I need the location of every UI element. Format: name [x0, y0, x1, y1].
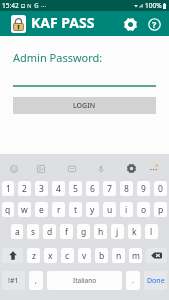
staticText: l — [150, 226, 153, 238]
staticText: q — [5, 204, 11, 216]
button[interactable]: q — [2, 202, 14, 217]
button[interactable]: f — [60, 224, 73, 239]
staticText: v — [82, 250, 87, 262]
staticText: j — [116, 226, 119, 238]
staticText: x — [48, 250, 53, 262]
button[interactable]: t — [69, 202, 82, 217]
staticText: o — [141, 204, 147, 216]
staticText: c — [65, 250, 70, 262]
button[interactable]: g — [77, 224, 90, 239]
staticText: w — [21, 204, 28, 216]
button[interactable]: 3 — [35, 181, 48, 196]
button[interactable]: Settings — [119, 13, 141, 35]
button[interactable]: 8 — [120, 181, 133, 196]
staticText: Done — [147, 276, 165, 286]
staticText: z — [32, 250, 36, 262]
staticText: LOGIN — [73, 101, 96, 111]
button[interactable]: Backspace — [146, 248, 167, 263]
button[interactable]: w — [18, 202, 31, 217]
button[interactable]: c — [61, 248, 74, 263]
button[interactable]: o — [137, 202, 150, 217]
button[interactable]: More options — [148, 163, 159, 174]
button[interactable]: Help — [143, 13, 165, 35]
staticText: N — [27, 2, 32, 10]
button[interactable]: z — [27, 248, 40, 263]
button[interactable]: 1 — [2, 181, 14, 196]
staticText: 2 — [22, 183, 27, 195]
staticText: 5 — [73, 183, 78, 195]
staticText: 15:42 — [2, 1, 19, 10]
button[interactable]: m — [129, 248, 142, 263]
button[interactable]: 7 — [103, 181, 116, 196]
staticText: Admin Password: — [13, 50, 103, 65]
staticText: n — [116, 250, 122, 262]
button[interactable]: Keyboard settings — [126, 163, 137, 174]
button[interactable]: Done — [144, 271, 167, 290]
button[interactable]: 0 — [154, 181, 167, 196]
button[interactable]: Clipboard — [66, 163, 77, 174]
staticText: e — [39, 204, 44, 216]
staticText: a — [15, 226, 20, 238]
staticText: f — [65, 226, 68, 238]
staticText: 1 — [6, 183, 11, 195]
button[interactable]: 9 — [137, 181, 150, 196]
staticText: Italiano — [73, 276, 97, 285]
button[interactable]: 6 — [86, 181, 99, 196]
button[interactable]: Stickers — [35, 163, 46, 174]
staticText: 6 — [90, 183, 95, 195]
button[interactable]: j — [111, 224, 124, 239]
staticText: 0 — [158, 183, 163, 195]
staticText: g — [81, 226, 87, 238]
button[interactable]: x — [44, 248, 57, 263]
staticText: KAF PASS — [31, 13, 95, 32]
staticText: d — [47, 226, 53, 238]
staticText: s — [31, 226, 36, 238]
button[interactable]: Italiano — [47, 271, 122, 290]
button[interactable]: l — [145, 224, 158, 239]
button[interactable]: u — [103, 202, 116, 217]
button[interactable]: i — [120, 202, 133, 217]
staticText: 100% — [145, 1, 162, 10]
button[interactable]: . — [126, 271, 140, 290]
button[interactable]: h — [94, 224, 107, 239]
staticText: !#1 — [8, 276, 19, 286]
button[interactable]: LOGIN — [13, 97, 156, 114]
button[interactable]: 2 — [18, 181, 31, 196]
staticText: 9 — [141, 183, 146, 195]
button[interactable]: n — [112, 248, 125, 263]
staticText: 3 — [39, 183, 44, 195]
button[interactable]: e — [35, 202, 48, 217]
button[interactable]: d — [43, 224, 56, 239]
staticText: k — [132, 226, 137, 238]
button[interactable]: 5 — [69, 181, 82, 196]
button[interactable]: a — [11, 224, 23, 239]
staticText: b — [99, 250, 105, 262]
staticText: . — [132, 276, 134, 286]
button[interactable]: !#1 — [2, 271, 25, 290]
staticText: 4 — [56, 183, 61, 195]
staticText: p — [158, 204, 164, 216]
button[interactable]: b — [95, 248, 108, 263]
staticText: y — [90, 204, 95, 216]
button[interactable]: p — [154, 202, 167, 217]
staticText: i — [125, 204, 128, 216]
button[interactable]: s — [27, 224, 39, 239]
button[interactable]: v — [78, 248, 91, 263]
staticText: , — [35, 276, 37, 286]
staticText: m — [132, 250, 140, 262]
staticText: r — [57, 204, 61, 216]
button[interactable]: Shift — [2, 248, 23, 263]
staticText: h — [98, 226, 104, 238]
staticText: t — [74, 204, 78, 216]
staticText: u — [107, 204, 113, 216]
button[interactable]: y — [86, 202, 99, 217]
button[interactable]: k — [128, 224, 141, 239]
staticText: 7 — [107, 183, 112, 195]
button[interactable]: , — [29, 271, 43, 290]
button[interactable]: r — [52, 202, 65, 217]
staticText: ? — [152, 18, 157, 30]
button[interactable]: 4 — [52, 181, 65, 196]
staticText: G — [34, 1, 39, 10]
button[interactable]: Voice input — [95, 163, 106, 174]
button[interactable]: Emoji — [8, 163, 19, 174]
